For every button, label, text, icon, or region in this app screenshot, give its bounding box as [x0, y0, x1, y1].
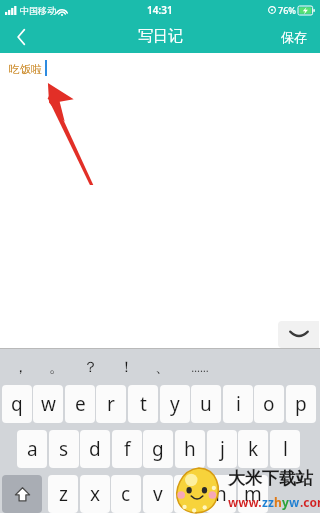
staticText: k — [248, 436, 259, 462]
button[interactable]: u — [191, 385, 221, 423]
staticText: www. — [228, 494, 262, 510]
button[interactable]: j — [207, 430, 237, 468]
staticText: j — [220, 436, 225, 462]
staticText: w — [41, 391, 56, 417]
staticText: 中国移动 — [20, 5, 56, 16]
button[interactable]: 、 — [148, 354, 176, 380]
staticText: h — [184, 436, 196, 462]
staticText: 保存 — [281, 29, 307, 45]
staticText: ！ — [119, 358, 134, 377]
button[interactable]: 保存 — [268, 20, 320, 53]
button[interactable]: Back — [0, 20, 42, 53]
button[interactable]: w — [33, 385, 63, 423]
staticText: y — [282, 494, 289, 510]
staticText: n — [215, 481, 227, 507]
staticText: s — [59, 436, 69, 462]
staticText: h — [274, 494, 282, 510]
staticText: p — [295, 391, 307, 417]
staticText: 大米下载站 — [228, 468, 313, 489]
button[interactable]: ！ — [112, 354, 140, 380]
staticText: m — [244, 481, 262, 507]
button[interactable]: z — [48, 475, 78, 513]
staticText: i — [236, 391, 241, 417]
staticText: ？ — [83, 358, 98, 377]
staticText: g — [152, 436, 164, 462]
button[interactable]: l — [270, 430, 300, 468]
button[interactable]: 。 — [42, 354, 70, 380]
staticText: …… — [191, 360, 209, 375]
staticText: 吃饭啦 — [9, 62, 42, 76]
button[interactable]: r — [96, 385, 126, 423]
staticText: u — [200, 391, 212, 417]
button[interactable]: q — [2, 385, 32, 423]
staticText: 14:31 — [147, 3, 173, 17]
button[interactable]: o — [254, 385, 284, 423]
button[interactable]: s — [49, 430, 79, 468]
button[interactable]: Hide keyboard — [278, 321, 319, 348]
staticText: o — [263, 391, 275, 417]
button[interactable]: m — [238, 475, 268, 513]
button[interactable]: g — [143, 430, 173, 468]
button[interactable]: p — [286, 385, 316, 423]
button[interactable]: c — [111, 475, 141, 513]
staticText: q — [11, 391, 23, 417]
button[interactable]: x — [80, 475, 110, 513]
staticText: zz — [262, 494, 274, 510]
button[interactable]: a — [17, 430, 47, 468]
staticText: v — [153, 481, 163, 507]
staticText: .com — [300, 494, 320, 510]
button[interactable]: f — [112, 430, 142, 468]
staticText: f — [124, 436, 131, 462]
staticText: e — [75, 391, 86, 417]
button[interactable]: b — [174, 475, 204, 513]
button[interactable]: e — [65, 385, 95, 423]
staticText: l — [283, 436, 288, 462]
button[interactable]: d — [80, 430, 110, 468]
staticText: t — [140, 391, 147, 417]
staticText: r — [107, 391, 115, 417]
staticText: 76% — [278, 4, 296, 16]
staticText: x — [90, 481, 101, 507]
button[interactable]: n — [206, 475, 236, 513]
button[interactable]: t — [128, 385, 158, 423]
button[interactable]: 吃饭啦 — [0, 53, 320, 348]
button[interactable]: ， — [6, 354, 34, 380]
button[interactable]: h — [175, 430, 205, 468]
staticText: z — [59, 481, 68, 507]
staticText: c — [121, 481, 131, 507]
staticText: a — [27, 436, 38, 462]
button[interactable]: v — [143, 475, 173, 513]
staticText: ， — [13, 358, 28, 377]
staticText: d — [89, 436, 101, 462]
button[interactable]: …… — [186, 354, 214, 380]
staticText: w — [289, 494, 300, 510]
staticText: 。 — [49, 358, 64, 377]
staticText: 、 — [155, 358, 170, 377]
button[interactable]: i — [223, 385, 253, 423]
button[interactable]: Shift — [2, 475, 42, 513]
button[interactable]: y — [160, 385, 190, 423]
staticText: b — [183, 481, 195, 507]
staticText: 写日记 — [138, 27, 183, 46]
button[interactable]: ？ — [76, 354, 104, 380]
staticText: y — [170, 391, 180, 417]
button[interactable]: k — [238, 430, 268, 468]
